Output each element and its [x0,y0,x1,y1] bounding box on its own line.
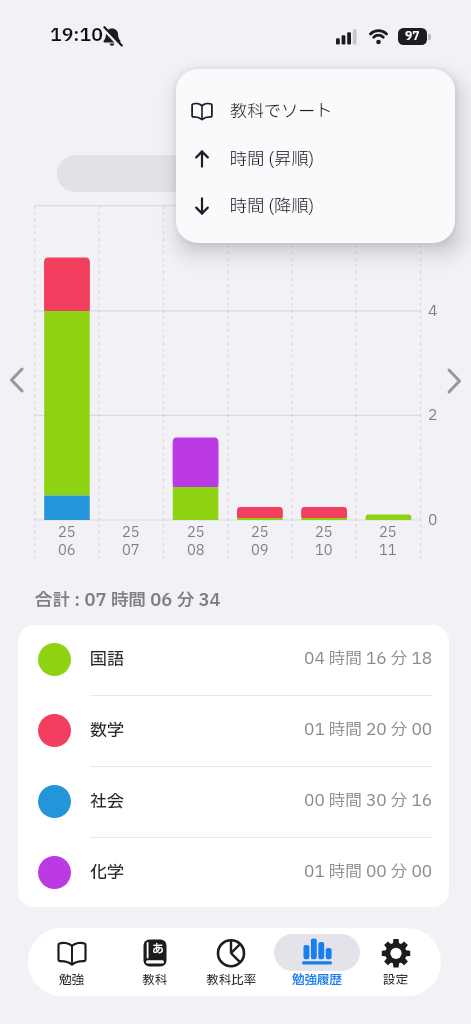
button[interactable]: 化学 [18,837,449,907]
button[interactable]: 勉強 [28,928,120,996]
staticText: 25 [58,522,76,543]
button[interactable]: 勉強履歴 [269,928,365,996]
staticText: 勉強 [59,971,85,990]
staticText: 97 [405,28,420,45]
staticText: 数学 [90,718,124,743]
button[interactable] [5,360,31,400]
button[interactable]: 国語 [18,625,449,695]
staticText: 01 時間 00 分 00 [304,860,433,885]
staticText: 合計 : 07 時間 06 分 34 [35,587,221,613]
button[interactable]: 設定 [348,928,441,996]
staticText: 教科でソート [230,99,332,124]
button[interactable]: 教科比率 [183,928,279,996]
staticText: 勉強履歴 [292,971,343,990]
staticText: 04 時間 16 分 18 [304,647,433,672]
staticText: 25 [251,522,269,543]
button[interactable]: 社会 [18,766,449,837]
button[interactable]: あ [107,928,203,996]
staticText: 25 [187,522,205,543]
staticText: 07 [122,540,140,561]
button[interactable]: 時間 (昇順) [176,135,455,183]
staticText: 09 [251,540,269,561]
button[interactable]: 時間 (降順) [176,182,455,230]
button[interactable] [440,361,466,401]
staticText: 25 [122,522,140,543]
staticText: 設定 [383,971,409,990]
staticText: 教科 [142,971,168,990]
staticText: 国語 [90,647,124,672]
staticText: 06 [58,540,76,561]
staticText: 00 時間 30 分 16 [304,789,433,814]
staticText: 4 [428,300,438,322]
staticText: 2 [428,404,438,426]
staticText: 19:10 [50,21,103,49]
staticText: 教科比率 [206,971,257,990]
staticText: 01 時間 20 分 00 [304,718,433,743]
staticText: 11 [379,540,397,561]
staticText: 社会 [90,789,124,814]
staticText: 時間 (昇順) [230,147,315,172]
staticText: 時間 (降順) [230,194,315,219]
staticText: 25 [379,522,397,543]
staticText: 化学 [90,860,124,885]
button[interactable]: 教科でソート [176,87,455,135]
staticText: 0 [428,509,438,531]
staticText: 25 [315,522,333,543]
staticText: 10 [315,540,333,561]
staticText: あ [152,940,165,958]
button[interactable]: 数学 [18,695,449,766]
staticText: 08 [187,540,205,561]
button[interactable] [57,155,190,192]
